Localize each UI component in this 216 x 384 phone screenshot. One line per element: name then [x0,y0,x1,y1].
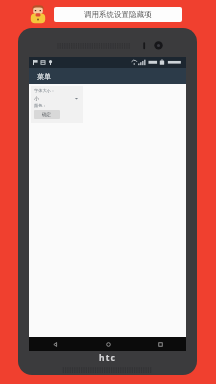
button[interactable]: 确定 [34,110,60,119]
button[interactable]: Back [29,337,82,351]
staticText: 字体大小： [34,88,55,93]
staticText: 确定 [42,112,52,118]
staticText: 菜单 [37,72,51,81]
staticText: htc [99,352,117,364]
button[interactable]: Home [82,337,134,351]
button[interactable]: 小 [34,94,80,102]
staticText: 调用系统设置隐藏项 [84,10,152,19]
button[interactable]: User avatar [28,4,48,24]
button[interactable]: 调用系统设置隐藏项 [54,7,182,22]
staticText: 颜色： [34,103,47,108]
button[interactable]: Recent apps [134,337,186,351]
staticText: 小 [34,95,39,101]
